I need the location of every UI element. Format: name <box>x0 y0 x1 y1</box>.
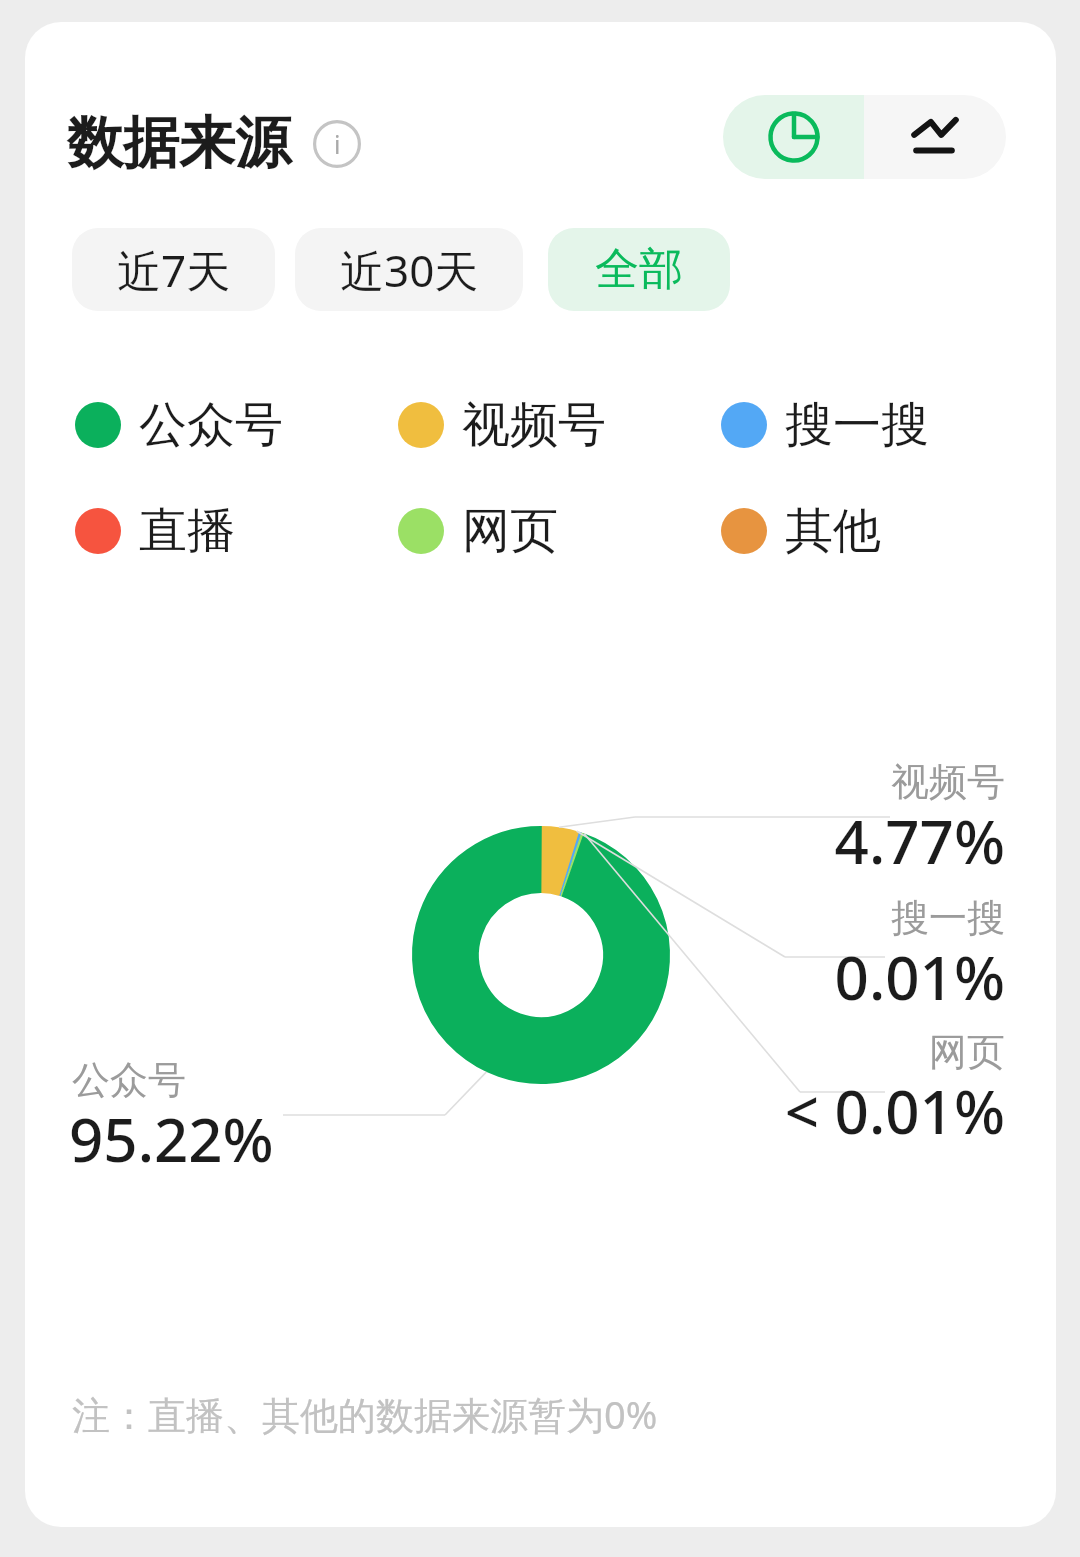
staticText: 注：直播、其他的数据来源暂为0% <box>72 1388 658 1440</box>
button[interactable]: 全部 <box>548 228 730 311</box>
button[interactable]: Line chart view <box>864 95 1006 179</box>
staticText: 其他 <box>785 501 881 561</box>
staticText: 公众号 <box>72 1056 186 1104</box>
staticText: 近30天 <box>340 240 479 300</box>
button[interactable]: 公众号 <box>75 395 283 455</box>
staticText: 网页 <box>815 1028 1005 1076</box>
staticText: 网页 <box>462 501 558 561</box>
staticText: 视频号 <box>815 758 1005 806</box>
staticText: 搜一搜 <box>815 894 1005 942</box>
staticText: i <box>334 127 341 161</box>
button[interactable]: Pie chart view <box>723 95 864 179</box>
staticText: 搜一搜 <box>785 395 929 455</box>
staticText: 0.01% <box>765 936 1005 1018</box>
button[interactable]: 网页 <box>398 501 558 561</box>
button[interactable]: 搜一搜 <box>721 395 929 455</box>
button[interactable]: Info <box>313 120 361 168</box>
staticText: 直播 <box>139 501 235 561</box>
staticText: 数据来源 <box>67 108 291 179</box>
button[interactable]: 其他 <box>721 501 881 561</box>
staticText: 4.77% <box>765 800 1005 882</box>
staticText: < 0.01% <box>725 1070 1005 1152</box>
button[interactable]: 近30天 <box>295 228 523 311</box>
staticText: 公众号 <box>139 395 283 455</box>
staticText: 全部 <box>595 242 683 297</box>
button[interactable]: 直播 <box>75 501 235 561</box>
staticText: 近7天 <box>117 240 231 300</box>
staticText: 视频号 <box>462 395 606 455</box>
staticText: 95.22% <box>69 1098 274 1180</box>
button[interactable]: 近7天 <box>72 228 275 311</box>
button[interactable]: 视频号 <box>398 395 606 455</box>
